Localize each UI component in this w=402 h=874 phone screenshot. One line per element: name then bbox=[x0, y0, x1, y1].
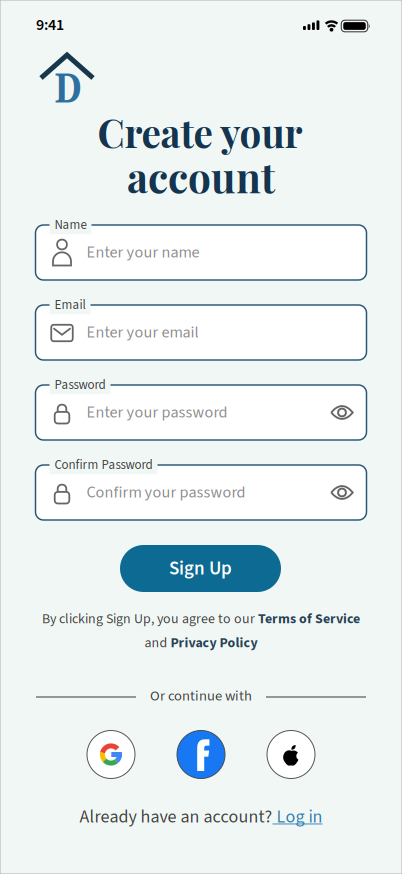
staticText: Enter your name bbox=[86, 241, 199, 264]
staticText: D bbox=[54, 60, 82, 114]
button[interactable]: Sign Up bbox=[120, 545, 281, 592]
staticText: Sign Up bbox=[169, 555, 232, 582]
staticText: account bbox=[127, 149, 275, 203]
staticText: Name bbox=[54, 216, 86, 234]
staticText: By clicking Sign Up, you agree to our bbox=[42, 609, 258, 629]
button[interactable]: Password bbox=[35, 385, 366, 440]
button[interactable]: Email bbox=[35, 305, 366, 360]
button[interactable]: Continue with Facebook bbox=[177, 730, 225, 778]
button[interactable]: Log in bbox=[272, 804, 322, 830]
button[interactable]: Privacy Policy bbox=[170, 633, 257, 653]
staticText: Privacy Policy bbox=[170, 633, 257, 653]
button[interactable]: Show password bbox=[322, 472, 362, 512]
button[interactable]: Show password bbox=[322, 392, 362, 432]
button[interactable]: Name bbox=[35, 225, 366, 280]
staticText: Confirm your password bbox=[86, 481, 245, 504]
staticText: and bbox=[144, 633, 170, 653]
button[interactable]: Continue with Google bbox=[87, 730, 135, 778]
staticText: Enter your password bbox=[86, 401, 227, 424]
staticText: Create your bbox=[97, 106, 302, 158]
staticText: 9:41 bbox=[36, 14, 64, 36]
staticText: Already have an account? bbox=[79, 804, 272, 830]
staticText: Password bbox=[54, 376, 105, 394]
staticText: Log in bbox=[272, 804, 322, 830]
staticText: Confirm Password bbox=[54, 456, 152, 474]
staticText: Or continue with bbox=[150, 686, 252, 706]
staticText: Terms of Service bbox=[258, 609, 360, 629]
button[interactable]: Confirm Password bbox=[35, 465, 366, 520]
staticText: Email bbox=[54, 296, 85, 314]
button[interactable]: Continue with Apple bbox=[267, 730, 315, 778]
button[interactable]: Terms of Service bbox=[258, 609, 360, 629]
staticText: Enter your email bbox=[86, 321, 198, 344]
